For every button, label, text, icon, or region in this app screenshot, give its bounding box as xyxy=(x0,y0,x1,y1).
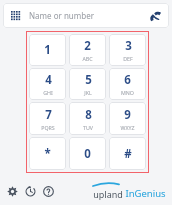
staticText: 5 xyxy=(85,72,92,88)
staticText: 1 xyxy=(44,42,51,58)
staticText: ABC xyxy=(82,55,93,62)
staticText: 4 xyxy=(45,72,52,88)
button[interactable]: 7 xyxy=(29,102,66,135)
staticText: TUV xyxy=(83,124,93,131)
button[interactable]: 2 xyxy=(69,34,106,66)
button[interactable]: 5 xyxy=(69,68,106,100)
staticText: # xyxy=(124,146,132,162)
button[interactable]: 1 xyxy=(29,34,66,66)
button[interactable]: 4 xyxy=(29,68,66,100)
staticText: GHI xyxy=(43,89,53,96)
button[interactable]: # xyxy=(109,137,146,170)
button[interactable]: 8 xyxy=(69,102,106,135)
staticText: InGenius xyxy=(125,187,166,200)
button[interactable]: Help xyxy=(41,184,56,199)
staticText: PQRS xyxy=(41,124,55,131)
staticText: 8 xyxy=(85,107,92,123)
button[interactable]: upland xyxy=(93,183,166,200)
button[interactable]: Dialpad xyxy=(9,9,23,23)
staticText: 0 xyxy=(84,146,91,162)
button[interactable]: 0 xyxy=(69,137,106,170)
staticText: * xyxy=(44,146,51,162)
button[interactable]: History xyxy=(23,184,38,199)
button[interactable]: Dialpad xyxy=(3,3,169,28)
staticText: 6 xyxy=(124,72,131,88)
staticText: 2 xyxy=(84,38,91,54)
button[interactable]: 9 xyxy=(109,102,146,135)
staticText: Name or number xyxy=(29,10,94,21)
staticText: 9 xyxy=(124,107,131,123)
staticText: upland xyxy=(93,188,123,200)
button[interactable]: Settings xyxy=(5,184,20,199)
button[interactable]: Call xyxy=(147,8,163,24)
button[interactable]: 3 xyxy=(109,34,146,66)
staticText: WXYZ xyxy=(120,124,135,131)
staticText: 3 xyxy=(125,38,132,54)
button[interactable]: 6 xyxy=(109,68,146,100)
staticText: DEF xyxy=(123,55,133,62)
staticText: 7 xyxy=(45,107,52,123)
staticText: MNO xyxy=(121,89,134,96)
staticText: JKL xyxy=(84,89,92,96)
button[interactable]: * xyxy=(29,137,66,170)
